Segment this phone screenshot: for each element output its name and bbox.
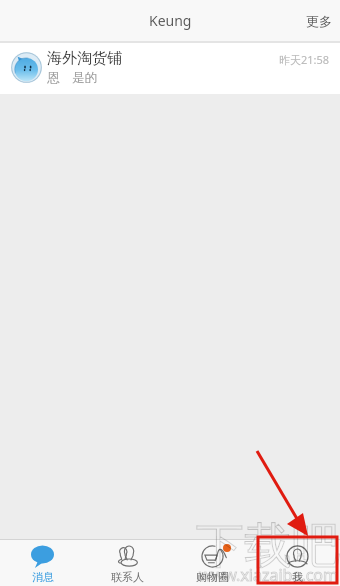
- staticText: 联系人: [111, 570, 144, 584]
- staticText: 更多: [306, 13, 332, 29]
- staticText: 我: [292, 570, 303, 584]
- staticText: www.xiazaiba.com: [199, 564, 338, 586]
- button[interactable]: 我: [255, 540, 340, 584]
- button[interactable]: 联系人: [85, 540, 170, 584]
- staticText: 昨天21:58: [279, 52, 330, 67]
- staticText: 消息: [32, 570, 54, 584]
- button[interactable]: 海外淘货铺: [0, 43, 340, 94]
- staticText: 海外淘货铺: [47, 49, 122, 68]
- staticText: 下载吧: [196, 516, 340, 576]
- staticText: 恩 是的: [47, 69, 97, 86]
- button[interactable]: 更多: [298, 7, 340, 35]
- button[interactable]: 消息: [0, 540, 85, 584]
- staticText: Keung: [149, 11, 192, 30]
- button[interactable]: 购物圈: [170, 540, 255, 584]
- staticText: 购物圈: [196, 570, 229, 584]
